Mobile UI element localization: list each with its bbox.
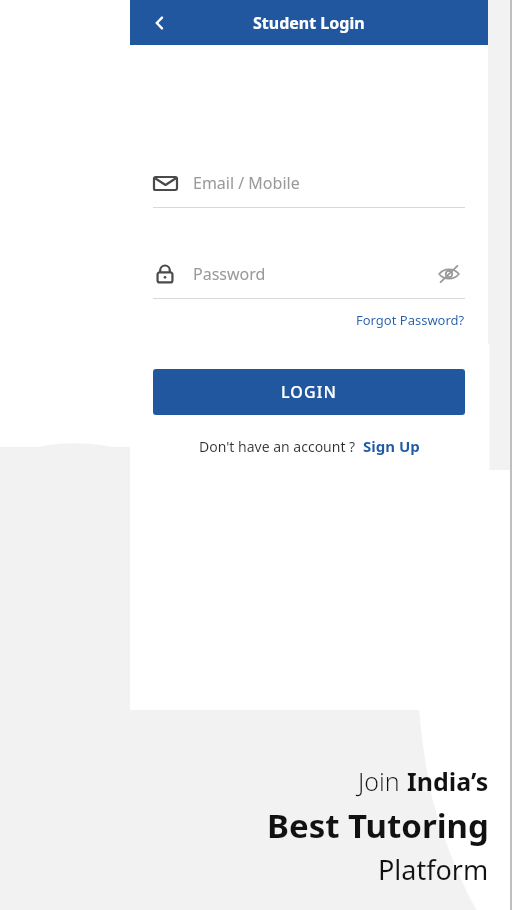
button[interactable]: LOGIN [153,369,465,415]
button[interactable]: Forgot Password? [356,308,465,332]
staticText: Sign Up [363,436,420,456]
staticText: Don't have an account ? [199,437,356,456]
staticText: LOGIN [281,381,337,403]
staticText: Platform [378,851,489,888]
button[interactable]: Sign Up [363,436,420,456]
button[interactable]: Password [153,250,465,298]
staticText: Password [193,263,433,285]
staticText: India’s [407,764,489,798]
button[interactable]: Back [142,5,178,41]
staticText: Forgot Password? [356,311,465,329]
staticText: Join [358,764,407,798]
staticText: Best Tutoring [267,803,489,848]
button[interactable]: Email / Mobile [153,159,465,207]
button[interactable]: Show password [433,258,465,290]
staticText: Student Login [253,12,365,34]
staticText: Email / Mobile [193,172,300,194]
